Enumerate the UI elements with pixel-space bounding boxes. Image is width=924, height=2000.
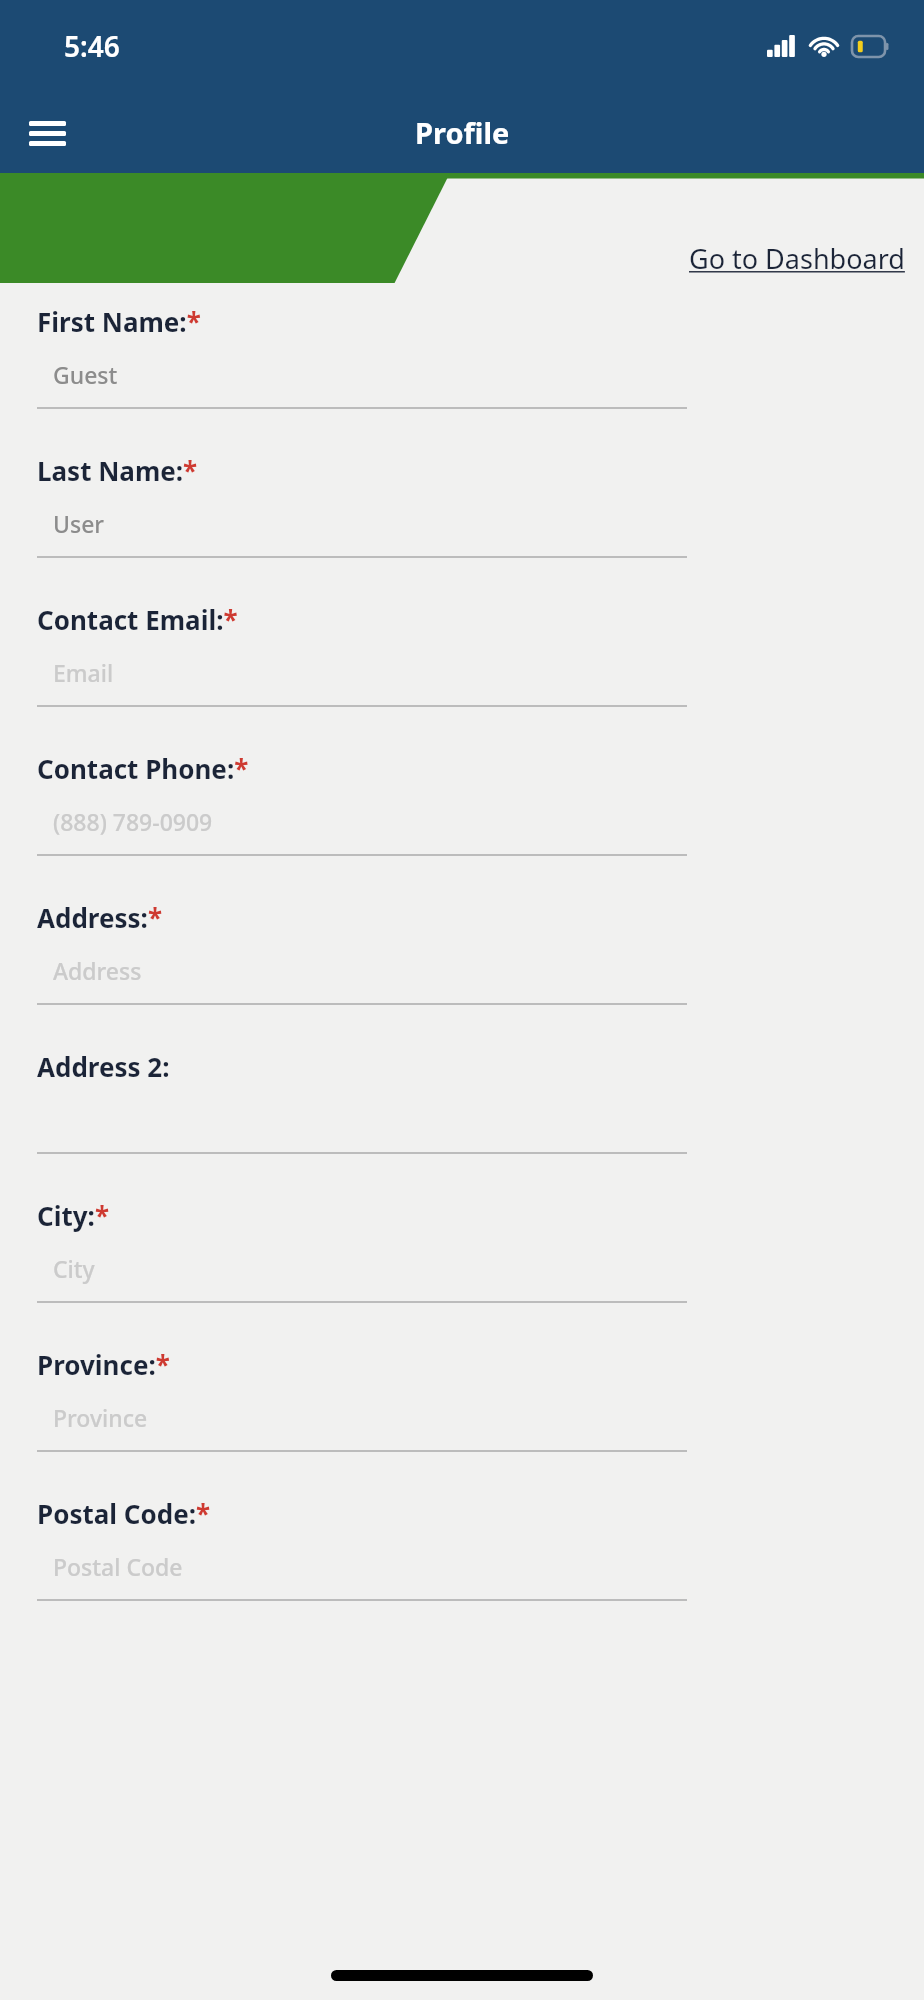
button[interactable]: Open navigation menu	[16, 102, 78, 164]
staticText: Province	[53, 1402, 148, 1433]
staticText: (888) 789-0909	[53, 806, 213, 837]
button[interactable]: Province:*	[0, 1344, 924, 1493]
button[interactable]: First Name:*	[0, 301, 924, 450]
staticText: Address	[53, 955, 142, 986]
staticText: Go to Dashboard	[689, 240, 905, 277]
button[interactable]: Contact Email:*	[0, 599, 924, 748]
button[interactable]: City:*	[0, 1195, 924, 1344]
staticText: Address 2:	[37, 1049, 170, 1084]
button[interactable]: Postal Code:*	[0, 1493, 924, 1642]
staticText: Contact Phone:*	[37, 751, 249, 786]
staticText: Profile	[415, 113, 510, 152]
button[interactable]: Contact Phone:*	[0, 748, 924, 897]
staticText: Last Name:*	[37, 453, 198, 488]
button[interactable]: Go to Dashboard	[689, 240, 905, 277]
staticText: City	[53, 1253, 95, 1284]
staticText: User	[53, 508, 105, 539]
button[interactable]: Last Name:*	[0, 450, 924, 599]
staticText: First Name:*	[37, 304, 201, 339]
staticText: Province:*	[37, 1347, 170, 1382]
staticText: Postal Code:*	[37, 1496, 211, 1531]
button[interactable]: Address 2:	[0, 1046, 924, 1195]
staticText: Contact Email:*	[37, 602, 238, 637]
staticText: City:*	[37, 1198, 109, 1233]
staticText: Guest	[53, 359, 118, 390]
staticText: Postal Code	[53, 1551, 183, 1582]
staticText: Address:*	[37, 900, 162, 935]
button[interactable]: Address:*	[0, 897, 924, 1046]
staticText: Email	[53, 657, 114, 688]
staticText: 5:46	[64, 27, 120, 65]
